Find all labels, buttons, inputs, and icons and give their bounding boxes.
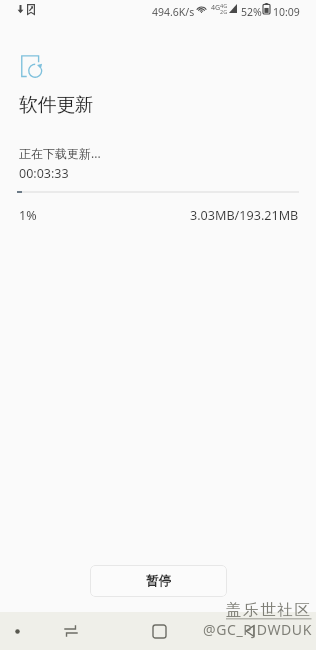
staticText: 正在下载更新... [19,145,101,161]
button[interactable]: Home [134,612,184,650]
staticText: 00:03:33 [19,165,69,182]
staticText: 52% [241,5,262,19]
button[interactable]: Back [225,612,275,650]
staticText: 10:09 [273,5,300,19]
staticText: 2G [220,8,228,15]
staticText: @GC_PJDWDUK [203,620,312,639]
button[interactable]: 暂停 [90,565,227,597]
staticText: 4G [220,2,228,9]
button[interactable]: Keep navigation bar [8,612,26,650]
staticText: 494.6K/s [152,5,195,19]
staticText: 3.03MB/193.21MB [190,207,299,224]
staticText: 暂停 [146,573,171,589]
staticText: 盖乐世社区 [226,600,312,620]
button[interactable]: Recents [46,612,96,650]
staticText: 软件更新 [19,93,94,117]
staticText: 1% [19,207,37,224]
staticText: 4G [211,3,221,13]
